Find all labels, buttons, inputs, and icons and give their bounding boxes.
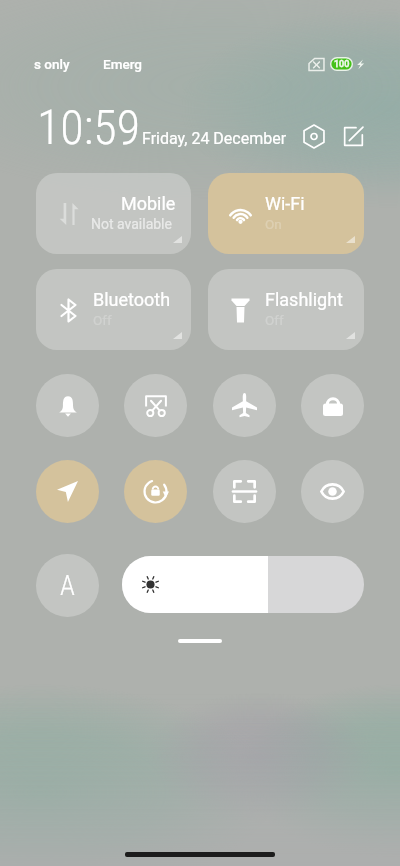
- button[interactable]: Flashlight: [208, 269, 364, 350]
- staticText: Off: [93, 312, 112, 328]
- button[interactable]: Lock: [301, 374, 364, 437]
- staticText: Wi-Fi: [265, 193, 305, 214]
- button[interactable]: Auto brightness: [36, 554, 99, 617]
- staticText: Not available: [91, 216, 172, 232]
- staticText: s only: [34, 56, 70, 72]
- staticText: 10:59: [37, 99, 141, 155]
- staticText: Friday, 24 December: [142, 129, 287, 148]
- staticText: Flashlight: [265, 289, 343, 310]
- button[interactable]: Screenshot: [124, 374, 187, 437]
- button[interactable]: Wi-Fi: [208, 173, 364, 254]
- button[interactable]: Sound: [36, 374, 99, 437]
- button[interactable]: Edit: [336, 119, 370, 153]
- staticText: 100: [334, 59, 350, 70]
- button[interactable]: Auto rotate: [124, 460, 187, 523]
- staticText: On: [265, 216, 282, 232]
- staticText: Bluetooth: [93, 289, 171, 310]
- staticText: Emerg: [103, 56, 142, 72]
- button[interactable]: Mobile: [36, 173, 191, 254]
- button[interactable]: Scan: [213, 460, 276, 523]
- staticText: Off: [265, 312, 284, 328]
- button[interactable]: Location: [36, 460, 99, 523]
- button[interactable]: Airplane mode: [213, 374, 276, 437]
- staticText: A: [60, 570, 75, 602]
- staticText: Mobile: [121, 193, 176, 214]
- button[interactable]: Reading mode: [301, 460, 364, 523]
- button[interactable]: Settings: [297, 119, 331, 153]
- button[interactable]: Brightness: [122, 556, 364, 613]
- button[interactable]: Bluetooth: [36, 269, 191, 350]
